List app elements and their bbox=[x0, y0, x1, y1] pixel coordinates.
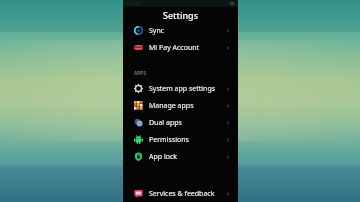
staticText: Settings bbox=[163, 9, 199, 21]
staticText: Mi Pay Account bbox=[149, 43, 200, 53]
button[interactable]: Permissions bbox=[123, 131, 238, 148]
staticText: Sync bbox=[149, 26, 165, 36]
staticText: Services & feedback bbox=[149, 189, 215, 199]
staticText: System app settings bbox=[149, 84, 216, 94]
button[interactable]: Sync bbox=[123, 22, 238, 39]
staticText: Permissions bbox=[149, 135, 189, 145]
button[interactable]: App lock bbox=[123, 148, 238, 165]
staticText: Dual apps bbox=[149, 118, 182, 128]
button[interactable]: Mi Pay Account bbox=[123, 39, 238, 56]
staticText: Manage apps bbox=[149, 101, 194, 111]
button[interactable]: Services & feedback bbox=[123, 185, 238, 202]
button[interactable]: System app settings bbox=[123, 80, 238, 97]
button[interactable]: Dual apps bbox=[123, 114, 238, 131]
staticText: APPS bbox=[134, 70, 147, 77]
button[interactable]: Manage apps bbox=[123, 97, 238, 114]
staticText: 6:41 AM bbox=[126, 1, 142, 6]
staticText: App lock bbox=[149, 152, 178, 162]
